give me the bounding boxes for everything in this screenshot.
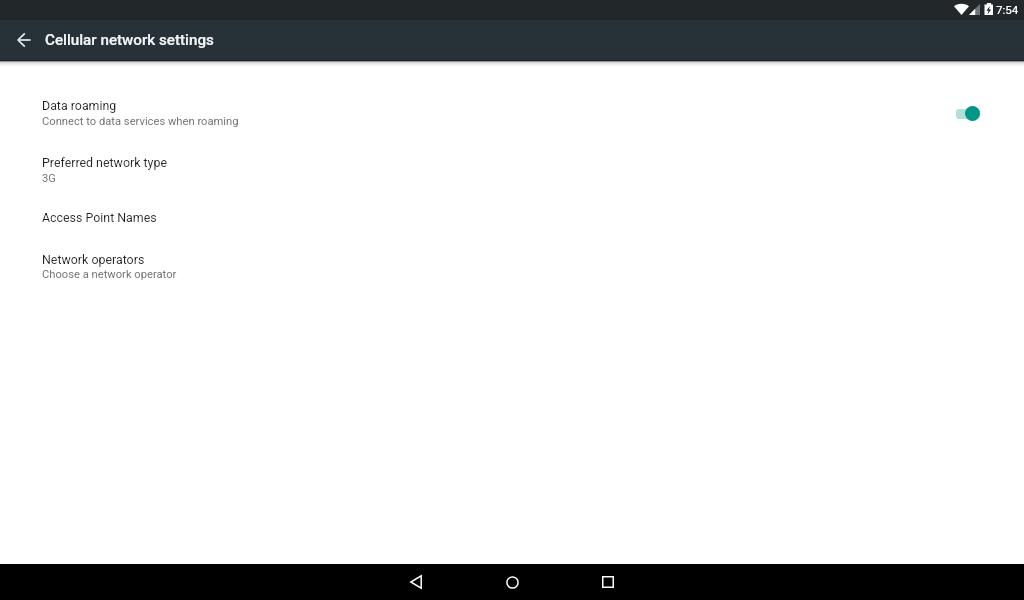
- staticText: Data roaming: [42, 98, 117, 113]
- button[interactable]: Preferred network type: [0, 141, 1024, 197]
- button[interactable]: Home: [492, 564, 532, 600]
- button[interactable]: Data roaming: [0, 60, 1024, 141]
- button[interactable]: Data roaming: [956, 98, 987, 126]
- staticText: Preferred network type: [42, 155, 167, 170]
- button[interactable]: Recent apps: [588, 564, 628, 600]
- button[interactable]: Back: [396, 564, 436, 600]
- staticText: 3G: [42, 172, 56, 185]
- staticText: Choose a network operator: [42, 268, 177, 281]
- staticText: Network operators: [42, 252, 145, 267]
- staticText: 7:54: [996, 3, 1019, 17]
- button[interactable]: Navigate up: [4, 20, 44, 60]
- button[interactable]: Access Point Names: [0, 197, 1024, 238]
- staticText: Access Point Names: [42, 210, 157, 225]
- staticText: Connect to data services when roaming: [42, 115, 239, 128]
- staticText: Cellular network settings: [45, 31, 214, 49]
- button[interactable]: Network operators: [0, 238, 1024, 295]
